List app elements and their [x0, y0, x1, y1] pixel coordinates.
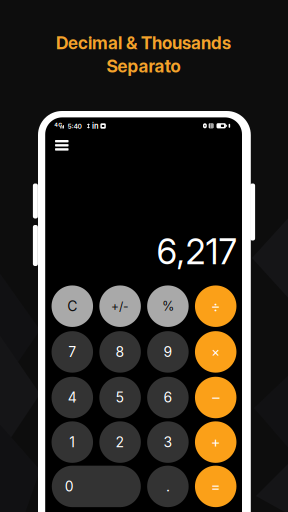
button[interactable]: C: [51, 285, 93, 327]
button[interactable]: –: [195, 377, 236, 418]
button[interactable]: 7: [51, 331, 93, 373]
button[interactable]: ÷: [195, 285, 236, 327]
staticText: 5:40: [68, 122, 82, 130]
staticText: 6: [163, 389, 172, 406]
staticText: ×: [211, 344, 220, 360]
staticText: Decimal & Thousands: [56, 32, 231, 53]
button[interactable]: 0: [52, 466, 141, 507]
button[interactable]: 8: [99, 331, 141, 373]
button[interactable]: 1: [51, 421, 93, 463]
staticText: 1: [69, 434, 75, 450]
staticText: 9: [163, 343, 172, 360]
staticText: 7: [68, 343, 76, 360]
button[interactable]: 3: [147, 421, 189, 463]
staticText: +: [211, 433, 221, 451]
staticText: =: [211, 477, 221, 495]
button[interactable]: .: [147, 466, 189, 507]
button[interactable]: Menu: [49, 133, 75, 157]
button[interactable]: %: [147, 285, 189, 327]
button[interactable]: 9: [147, 331, 189, 373]
button[interactable]: +: [195, 421, 236, 463]
staticText: +/-: [111, 299, 129, 313]
button[interactable]: +/-: [99, 285, 141, 327]
button[interactable]: 6: [147, 377, 189, 418]
staticText: .: [166, 478, 170, 495]
staticText: 5: [116, 389, 125, 406]
button[interactable]: ×: [195, 331, 236, 373]
staticText: 2: [116, 434, 125, 450]
staticText: ÷: [211, 297, 221, 315]
staticText: 6,217: [156, 231, 236, 272]
staticText: –: [212, 389, 219, 406]
button[interactable]: =: [195, 466, 236, 507]
staticText: Separato: [107, 55, 181, 77]
button[interactable]: 5: [99, 377, 141, 418]
staticText: in: [92, 122, 99, 130]
staticText: %: [162, 298, 174, 314]
staticText: C: [67, 298, 77, 315]
staticText: 3: [163, 434, 172, 450]
staticText: 0: [65, 478, 74, 495]
staticText: 8: [116, 343, 125, 360]
staticText: 4: [68, 389, 77, 406]
staticText: 4G: [54, 122, 62, 128]
button[interactable]: 4: [51, 377, 93, 418]
button[interactable]: 2: [99, 421, 141, 463]
